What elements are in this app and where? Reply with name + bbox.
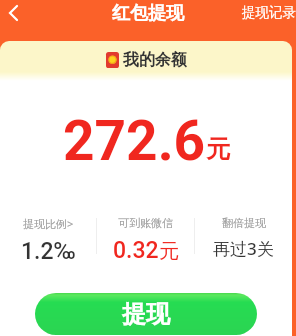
staticText: 0.32 [113, 237, 159, 264]
staticText: 提现比例> [23, 216, 74, 231]
staticText: 红包提现 [112, 2, 184, 25]
staticText: 元 [206, 134, 230, 164]
button[interactable]: 提现记录 [234, 0, 296, 27]
staticText: 可到账微信 [118, 216, 173, 230]
staticText: 翻倍提现 [222, 216, 266, 230]
staticText: 元 [159, 239, 179, 264]
staticText: 1.2‰ [21, 238, 76, 265]
staticText: 提现 [122, 299, 170, 329]
staticText: 272.6 [63, 109, 206, 173]
staticText: 再过3关 [213, 237, 274, 260]
button[interactable]: Back [0, 0, 26, 26]
button[interactable]: 提现 [35, 293, 257, 335]
staticText: 我的余额 [123, 50, 187, 70]
staticText: 提现记录 [242, 4, 296, 21]
